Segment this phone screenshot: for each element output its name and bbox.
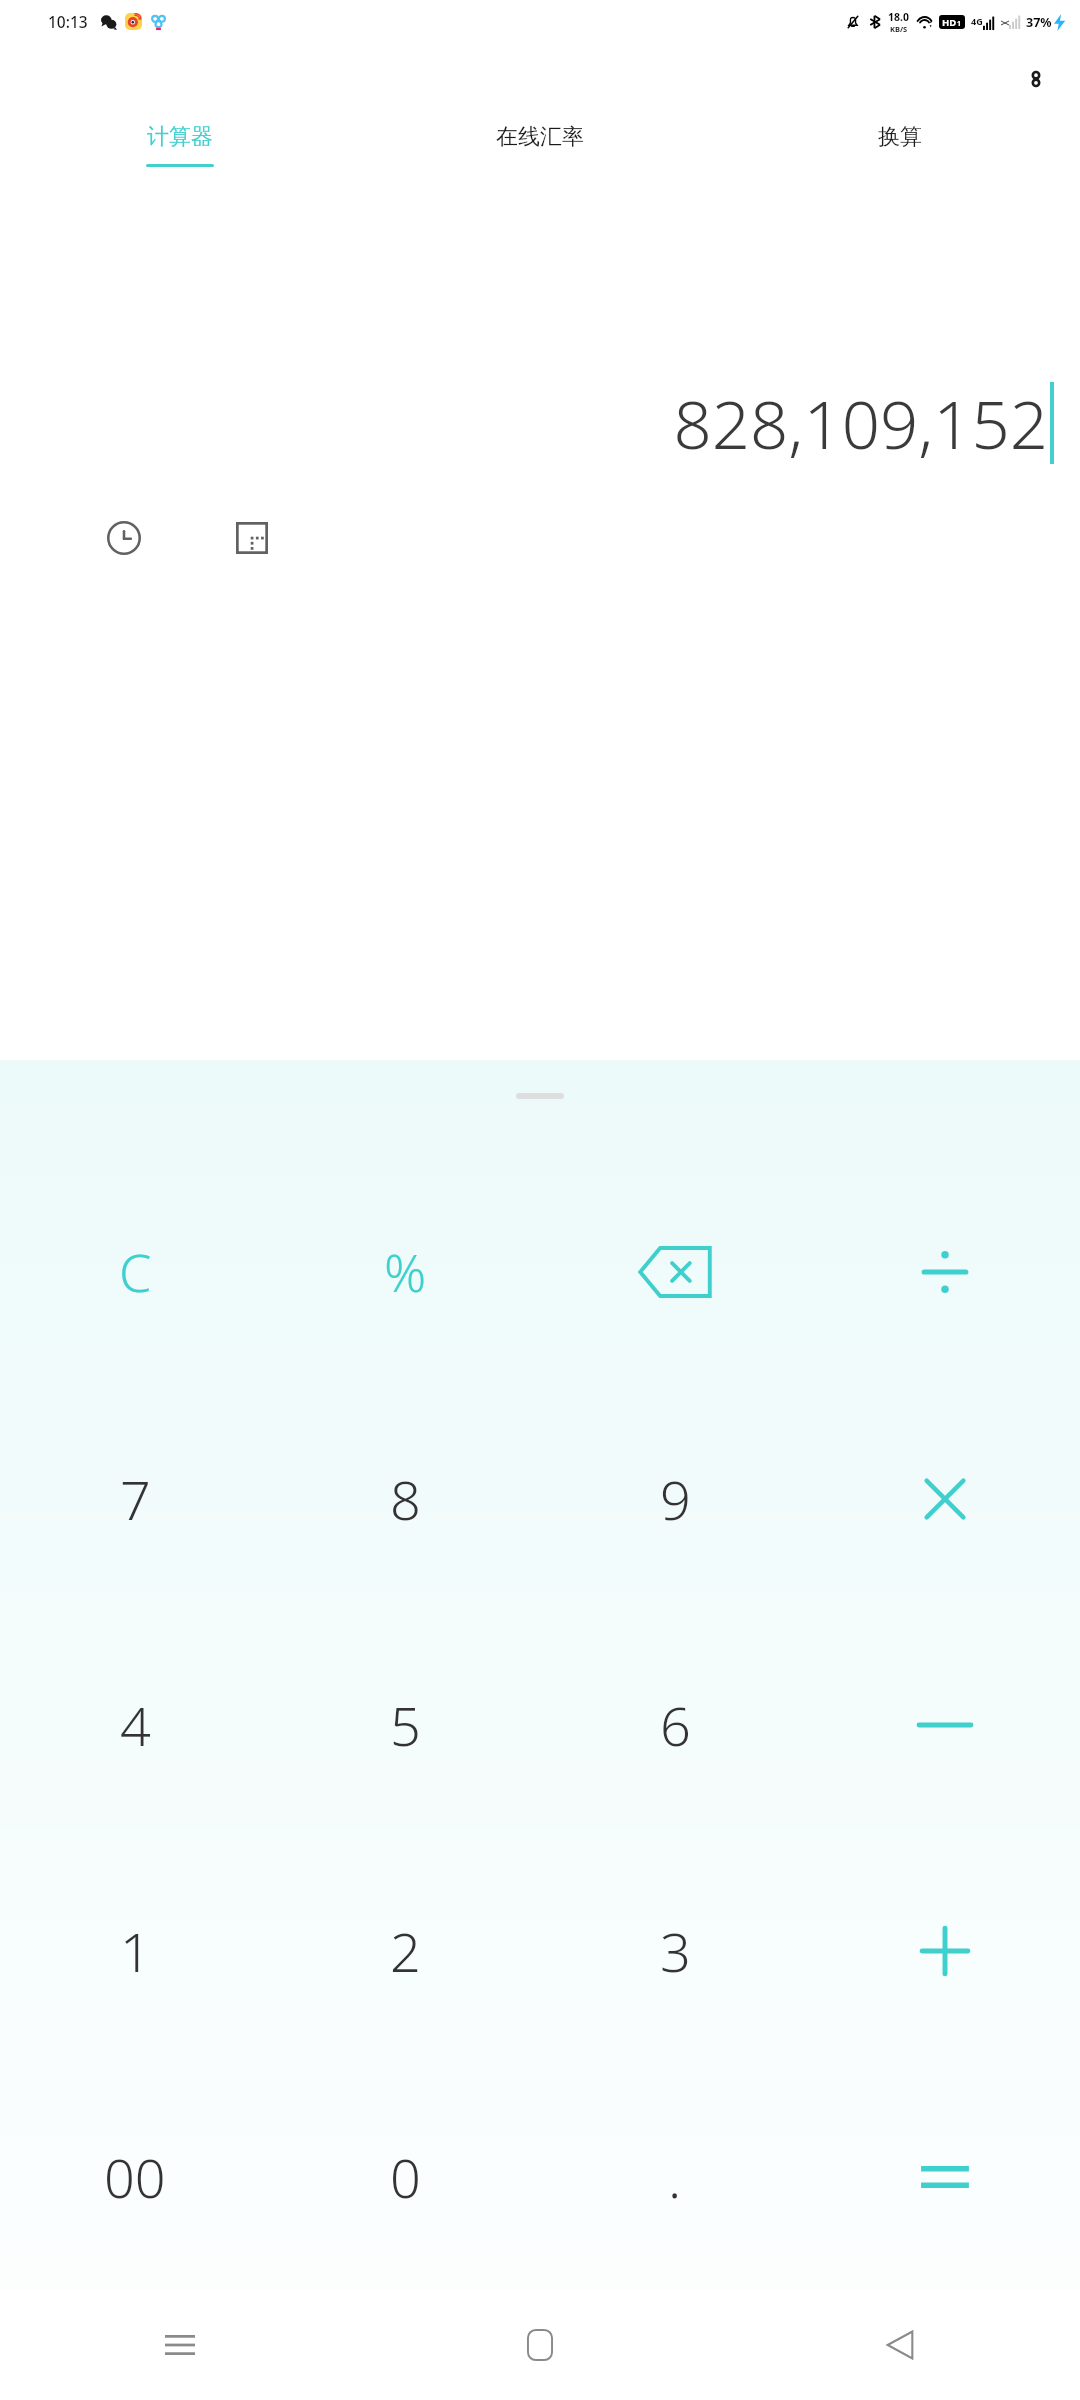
button[interactable]: 3 (540, 1838, 810, 2064)
button[interactable]: 5 (270, 1612, 540, 1838)
button[interactable]: 00 (0, 2064, 270, 2290)
staticText: . (668, 2140, 682, 2214)
staticText: 00 (104, 2140, 166, 2214)
button[interactable]: 0 (270, 2064, 540, 2290)
staticText: 4G (971, 15, 983, 27)
button[interactable]: 7 (0, 1385, 270, 1612)
button[interactable]: 6 (540, 1612, 810, 1838)
button[interactable]: Multiply (810, 1385, 1080, 1612)
button[interactable]: History (96, 510, 152, 566)
button[interactable]: Add (810, 1838, 1080, 2064)
staticText: C (119, 1236, 152, 1307)
staticText: 0 (390, 2140, 421, 2214)
button[interactable]: 在线汇率 (360, 115, 720, 207)
staticText: 6 (660, 1688, 691, 1762)
staticText: 3 (660, 1914, 691, 1988)
button[interactable]: Recents (0, 2290, 360, 2400)
button[interactable]: C (0, 1158, 270, 1385)
staticText: 10:13 (48, 11, 88, 32)
staticText: % (384, 1236, 427, 1307)
staticText: KB/S (890, 24, 908, 34)
button[interactable]: 计算器 (0, 115, 360, 207)
staticText: 4 (120, 1688, 151, 1762)
staticText: 换算 (878, 123, 922, 151)
staticText: 计算器 (147, 123, 213, 151)
staticText: 1 (120, 1914, 151, 1988)
button[interactable]: Back (720, 2290, 1080, 2400)
button[interactable]: 4 (0, 1612, 270, 1838)
staticText: 828,109,152 (673, 377, 1048, 468)
staticText: 1 (957, 19, 962, 29)
button[interactable]: Home (360, 2290, 720, 2400)
staticText: 18.0 (888, 10, 909, 24)
button[interactable]: Equals (810, 2064, 1080, 2290)
button[interactable]: . (540, 2064, 810, 2290)
staticText: 9 (660, 1462, 691, 1536)
button[interactable]: 8 (270, 1385, 540, 1612)
staticText: 8 (390, 1462, 421, 1536)
button[interactable]: 1 (0, 1838, 270, 2064)
button[interactable]: Divide (810, 1158, 1080, 1385)
staticText: 在线汇率 (496, 123, 584, 151)
button[interactable]: 换算 (720, 115, 1080, 207)
button[interactable]: Backspace (540, 1158, 810, 1385)
button[interactable]: % (270, 1158, 540, 1385)
other: Silent mode (845, 14, 861, 30)
staticText: 37% (1026, 14, 1052, 31)
button[interactable]: Scientific mode (224, 510, 280, 566)
staticText: 2 (390, 1914, 421, 1988)
button[interactable]: Subtract (810, 1612, 1080, 1838)
staticText: HD (942, 16, 957, 29)
button[interactable]: More options (1012, 55, 1060, 103)
button[interactable]: 9 (540, 1385, 810, 1612)
button[interactable]: 2 (270, 1838, 540, 2064)
staticText: 7 (120, 1462, 151, 1536)
staticText: 5 (390, 1688, 421, 1762)
